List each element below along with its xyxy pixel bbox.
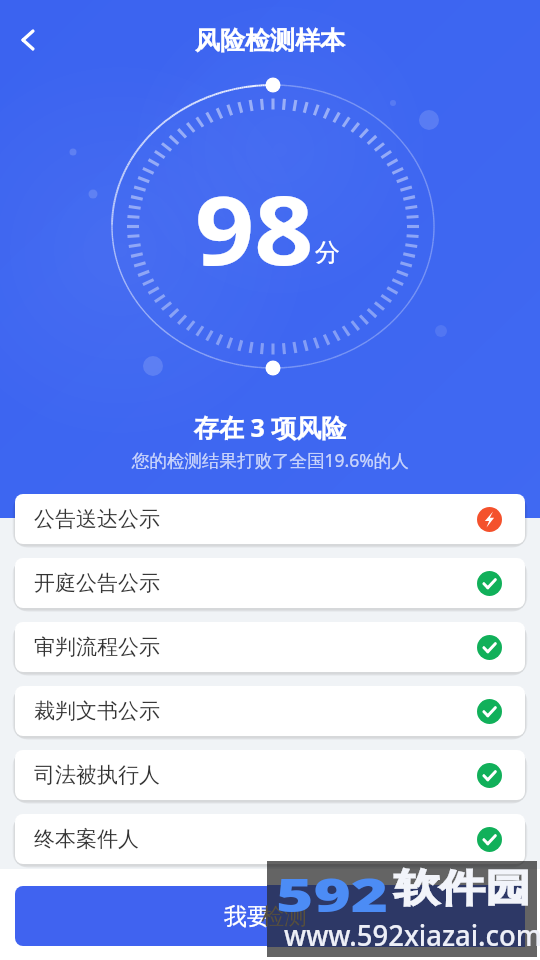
staticText: 检测 — [261, 902, 307, 931]
staticText: 开庭公告公示 — [34, 570, 160, 596]
button[interactable]: 我要检测 — [15, 886, 525, 946]
staticText: www.592xiazai.com — [284, 916, 540, 954]
staticText: 终本案件人 — [34, 826, 139, 852]
staticText: 存在 3 项风险 — [194, 410, 347, 444]
staticText: 您的检测结果打败了全国19.6%的人 — [132, 448, 409, 472]
button[interactable]: 开庭公告公示 — [15, 558, 525, 608]
staticText: 98 — [195, 163, 314, 292]
staticText: 我要检测 — [224, 902, 316, 931]
button[interactable]: Back — [4, 16, 52, 64]
button[interactable]: 裁判文书公示 — [15, 686, 525, 736]
staticText: 592 — [276, 863, 389, 926]
staticText: 分 — [315, 237, 340, 268]
button[interactable]: 审判流程公示 — [15, 622, 525, 672]
button[interactable]: 司法被执行人 — [15, 750, 525, 800]
button[interactable]: 终本案件人 — [15, 814, 525, 864]
staticText: 审判流程公示 — [34, 634, 160, 660]
staticText: 司法被执行人 — [34, 762, 160, 788]
staticText: 软件园 — [394, 864, 531, 912]
staticText: 公告送达公示 — [34, 506, 160, 532]
button[interactable]: 公告送达公示 — [15, 494, 525, 544]
staticText: 风险检测样本 — [195, 25, 345, 56]
staticText: 裁判文书公示 — [34, 698, 160, 724]
